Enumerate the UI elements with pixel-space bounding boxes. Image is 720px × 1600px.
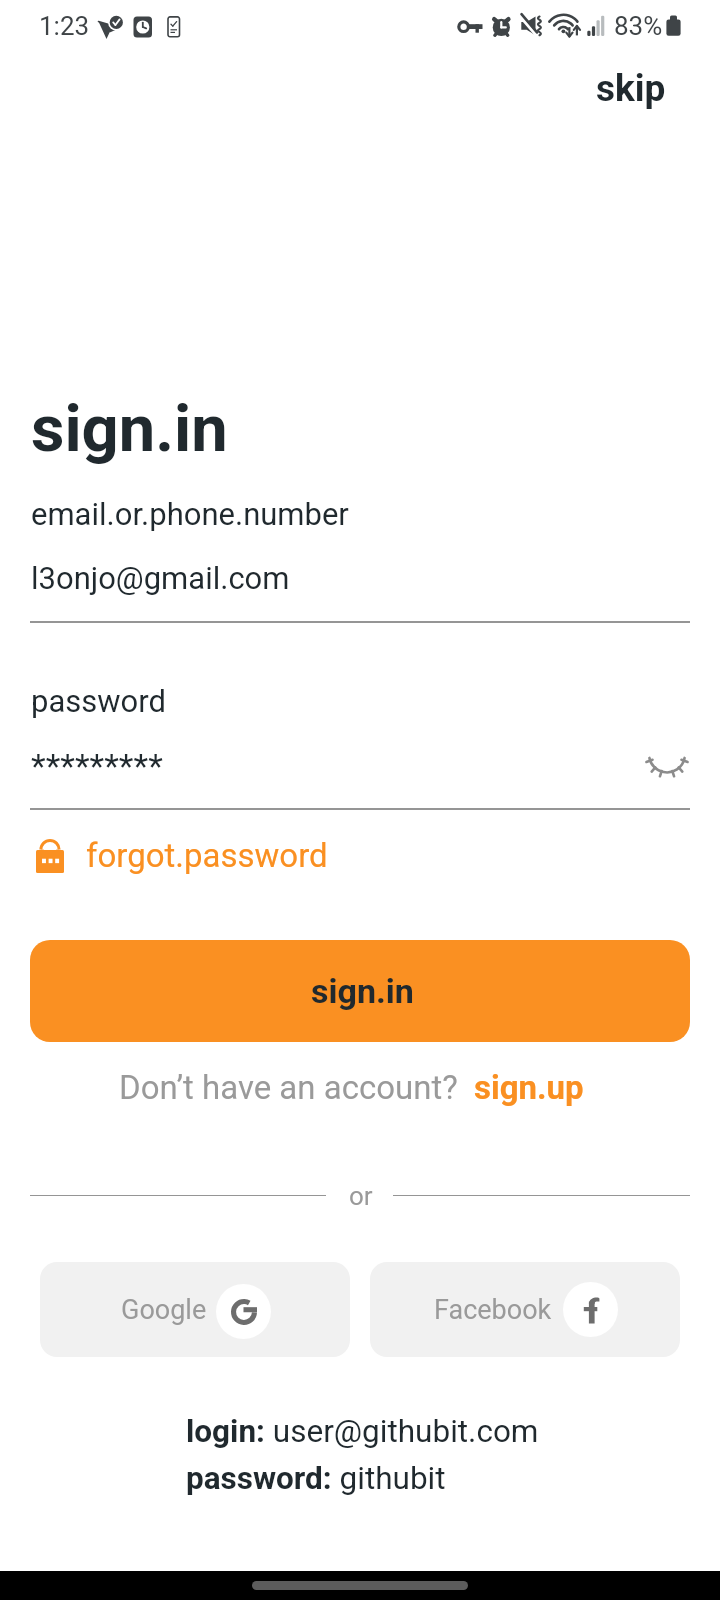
- staticText: skip: [596, 67, 666, 110]
- staticText: Facebook: [434, 1294, 552, 1326]
- staticText: Google: [121, 1294, 207, 1326]
- staticText: Don’t have an account?: [119, 1068, 458, 1107]
- staticText: login: user@githubit.com: [186, 1413, 539, 1450]
- button[interactable]: sign.in: [30, 940, 690, 1042]
- button[interactable]: Google: [40, 1262, 350, 1357]
- staticText: *********: [31, 746, 163, 786]
- button[interactable]: sign.up: [464, 1058, 594, 1117]
- button[interactable]: skip: [582, 57, 680, 120]
- button[interactable]: Show password: [641, 734, 693, 786]
- staticText: sign.in: [311, 971, 414, 1011]
- staticText: 83%: [614, 11, 663, 41]
- staticText: sign.in: [31, 391, 228, 467]
- staticText: forgot.password: [86, 836, 328, 875]
- staticText: sign.up: [474, 1068, 584, 1107]
- staticText: password: [31, 683, 166, 719]
- staticText: password: githubit: [186, 1460, 446, 1497]
- button[interactable]: forgot.password: [26, 830, 336, 882]
- staticText: l3onjo@gmail.com: [31, 560, 290, 596]
- staticText: email.or.phone.number: [31, 496, 349, 532]
- staticText: 1:23: [39, 11, 90, 41]
- staticText: or: [349, 1181, 373, 1211]
- button[interactable]: Facebook: [370, 1262, 680, 1357]
